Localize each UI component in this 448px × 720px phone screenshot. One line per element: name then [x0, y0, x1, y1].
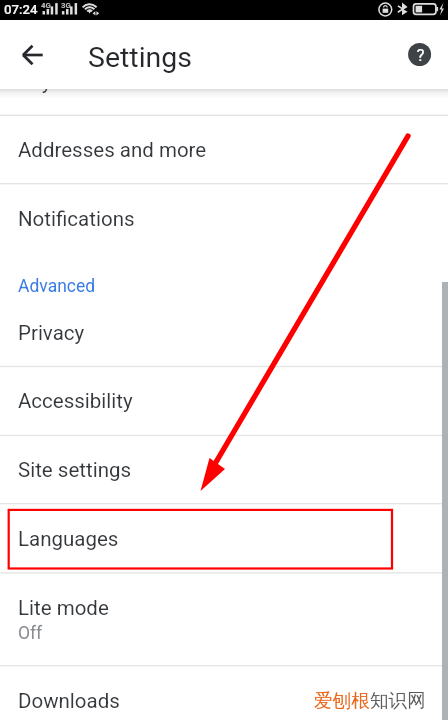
staticText: Advanced [18, 276, 96, 297]
staticText: Languages [18, 527, 119, 551]
button[interactable] [0, 254, 448, 297]
staticText: 爱刨根 [314, 689, 370, 712]
button[interactable] [0, 572, 448, 665]
button[interactable] [0, 297, 448, 366]
staticText: Privacy [18, 321, 85, 345]
staticText: Payment methods [18, 89, 185, 94]
staticText: 知识网 [370, 689, 426, 712]
staticText: Addresses and more [18, 138, 207, 162]
button[interactable] [0, 435, 448, 503]
staticText: Site settings [18, 458, 132, 482]
button[interactable] [0, 183, 448, 254]
button[interactable] [0, 366, 448, 435]
staticText: Lite mode [18, 596, 109, 620]
button[interactable] [0, 665, 448, 720]
staticText: ? [416, 45, 425, 65]
staticText: 4G [41, 1, 51, 10]
staticText: Downloads [18, 689, 120, 713]
staticText: Settings [88, 41, 193, 74]
button[interactable]: Back [9, 32, 55, 78]
button[interactable]: Help [397, 32, 443, 78]
button[interactable] [0, 503, 448, 572]
button[interactable] [0, 115, 448, 183]
staticText: Off [18, 623, 43, 644]
staticText: Notifications [18, 207, 135, 231]
staticText: 3G [61, 1, 71, 10]
staticText: Accessibility [18, 389, 133, 413]
staticText: 07:24 [4, 2, 38, 17]
